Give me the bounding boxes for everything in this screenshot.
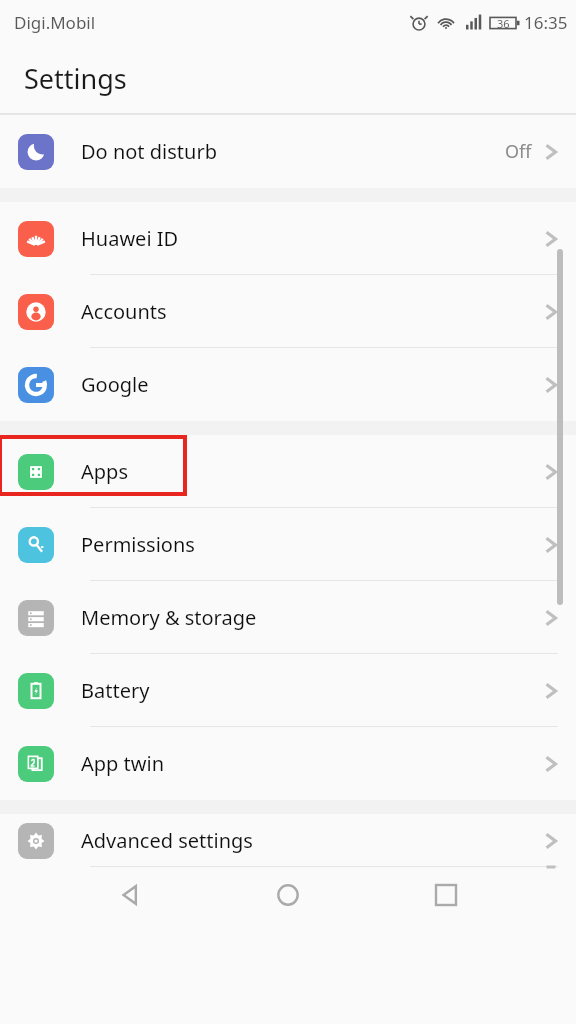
button[interactable]: Apps [0, 435, 576, 508]
staticText: 16:35 [524, 11, 568, 34]
button[interactable]: Accounts [0, 275, 576, 348]
button[interactable]: Google [0, 348, 576, 421]
button[interactable]: Home [261, 868, 315, 922]
staticText: Advanced settings [81, 827, 253, 854]
button[interactable]: Back [104, 868, 158, 922]
staticText: Memory & storage [81, 604, 257, 631]
button[interactable]: Permissions [0, 508, 576, 581]
button[interactable]: Recent apps [419, 868, 473, 922]
button[interactable]: Battery [0, 654, 576, 727]
staticText: Settings [24, 60, 127, 97]
staticText: App twin [81, 750, 165, 777]
staticText: Accounts [81, 298, 167, 325]
button[interactable]: Advanced settings [0, 814, 576, 867]
button[interactable]: Memory & storage [0, 581, 576, 654]
staticText: Permissions [81, 531, 195, 558]
button[interactable]: App twin [0, 727, 576, 800]
button[interactable]: Do not disturb [0, 115, 576, 188]
staticText: Do not disturb [81, 138, 217, 165]
staticText: Battery [81, 677, 150, 704]
staticText: Apps [81, 458, 128, 485]
button[interactable]: Huawei ID [0, 202, 576, 275]
staticText: Google [81, 371, 149, 398]
staticText: 36 [497, 16, 510, 31]
staticText: Digi.Mobil [14, 11, 96, 34]
staticText: Off [505, 139, 532, 164]
staticText: Huawei ID [81, 225, 179, 252]
